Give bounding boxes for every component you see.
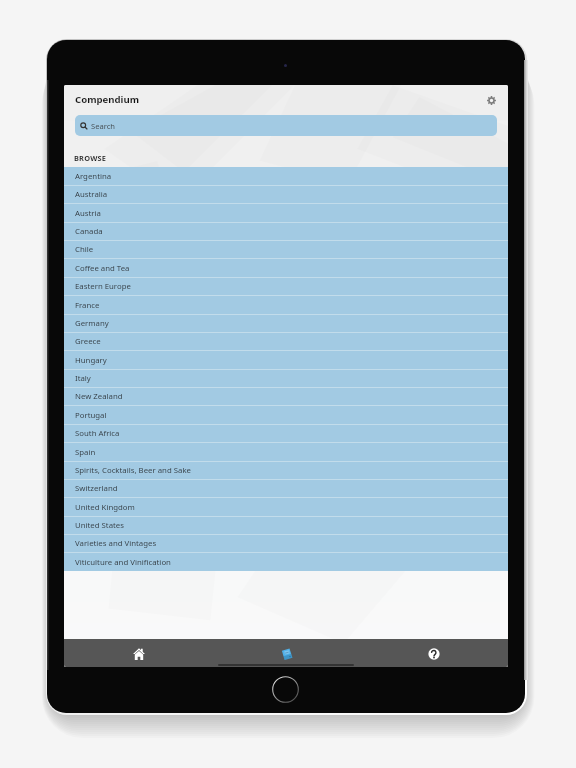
button[interactable]: Spain [64, 443, 508, 461]
button[interactable]: United States [64, 516, 508, 534]
button[interactable]: France [64, 296, 508, 314]
button[interactable]: Austria [64, 204, 508, 222]
staticText: Canada [75, 226, 103, 237]
button[interactable]: Italy [64, 369, 508, 387]
button[interactable]: Eastern Europe [64, 277, 508, 295]
button[interactable]: New Zealand [64, 387, 508, 405]
staticText: Spirits, Cocktails, Beer and Sake [75, 465, 191, 476]
staticText: BROWSE [74, 153, 107, 163]
button[interactable]: Canada [64, 222, 508, 240]
staticText: France [75, 300, 100, 311]
button[interactable]: Home [65, 639, 212, 667]
staticText: Austria [75, 208, 101, 219]
staticText: Germany [75, 318, 109, 329]
staticText: Chile [75, 244, 94, 255]
staticText: Argentina [75, 171, 112, 182]
staticText: Switzerland [75, 483, 118, 494]
button[interactable]: Germany [64, 314, 508, 332]
button[interactable]: Coffee and Tea [64, 259, 508, 277]
button[interactable]: Spirits, Cocktails, Beer and Sake [64, 461, 508, 479]
staticText: United States [75, 520, 124, 531]
button[interactable]: Settings [483, 92, 500, 109]
staticText: Greece [75, 336, 101, 347]
button[interactable]: Chile [64, 240, 508, 258]
staticText: Hungary [75, 355, 107, 366]
staticText: Compendium [75, 93, 140, 106]
staticText: Varieties and Vintages [75, 538, 157, 549]
button[interactable]: Hungary [64, 351, 508, 369]
button[interactable]: Switzerland [64, 479, 508, 497]
staticText: Viticulture and Vinification [75, 557, 171, 568]
staticText: New Zealand [75, 391, 123, 402]
staticText: United Kingdom [75, 502, 135, 513]
button[interactable]: Portugal [64, 406, 508, 424]
button[interactable]: Viticulture and Vinification [64, 553, 508, 571]
staticText: Coffee and Tea [75, 263, 130, 274]
staticText: Italy [75, 373, 91, 384]
staticText: Spain [75, 447, 96, 458]
staticText: Australia [75, 189, 108, 200]
button[interactable]: Compendium [213, 639, 360, 667]
staticText: Search [91, 121, 116, 131]
button[interactable]: Varieties and Vintages [64, 534, 508, 552]
button[interactable]: Help [360, 639, 507, 667]
button[interactable]: Argentina [64, 167, 508, 185]
staticText: Eastern Europe [75, 281, 131, 292]
button[interactable]: United Kingdom [64, 498, 508, 516]
staticText: South Africa [75, 428, 120, 439]
button[interactable]: Search [75, 115, 497, 136]
button[interactable]: Greece [64, 332, 508, 350]
staticText: Portugal [75, 410, 107, 421]
button[interactable]: Australia [64, 185, 508, 203]
button[interactable]: South Africa [64, 424, 508, 442]
